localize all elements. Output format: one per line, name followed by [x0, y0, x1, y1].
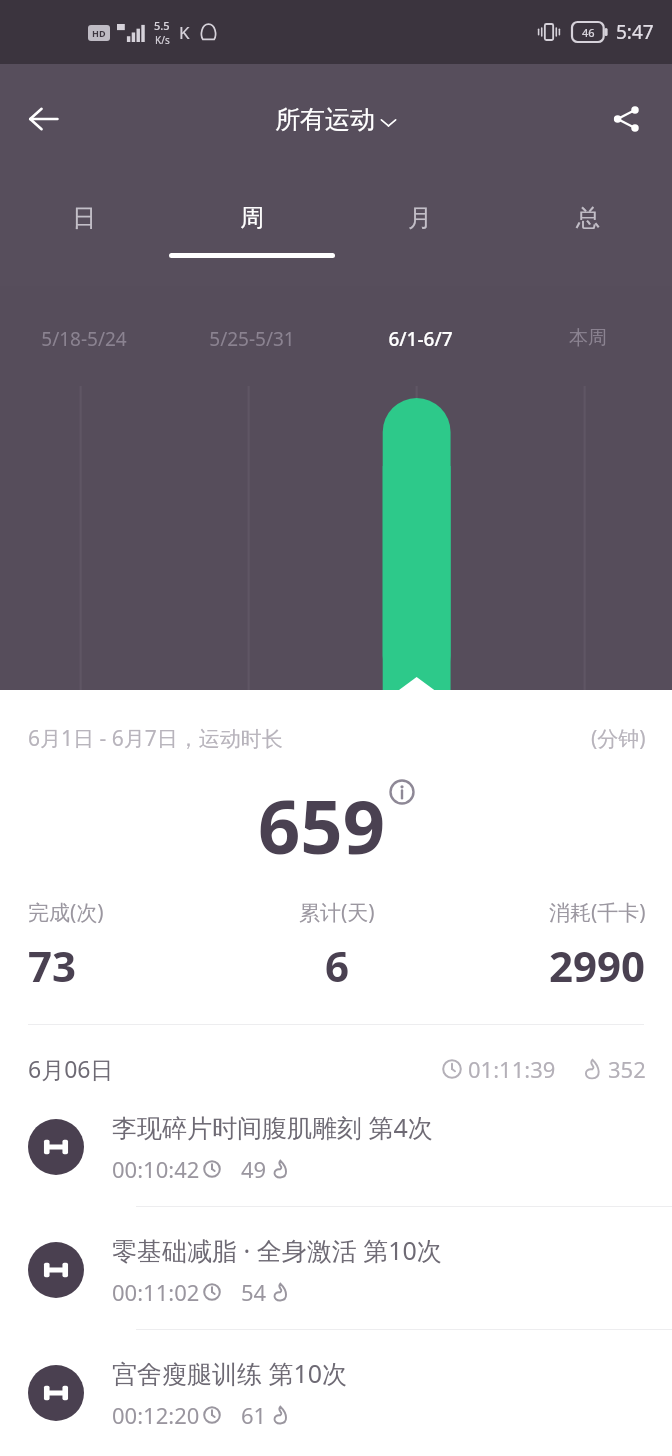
staticText: 61	[241, 1400, 267, 1430]
button[interactable]: 本周	[504, 326, 672, 350]
button[interactable]: 消耗(千卡)	[440, 898, 646, 994]
staticText: 6月06日	[28, 1053, 114, 1084]
button[interactable]: 累计(天)	[234, 898, 440, 994]
staticText: 00:10:42	[112, 1154, 200, 1184]
staticText: 00:12:20	[112, 1400, 200, 1430]
button[interactable]: 所有运动	[267, 98, 405, 141]
staticText: 总	[576, 203, 600, 233]
staticText: 本周	[569, 326, 607, 350]
staticText: 352	[608, 1054, 646, 1084]
staticText: (分钟)	[591, 724, 646, 753]
staticText: 月	[408, 203, 432, 233]
button[interactable]: 5/18-5/24	[0, 326, 168, 352]
button[interactable]: 李现碎片时间腹肌雕刻 第4次	[0, 1084, 672, 1207]
staticText: HD	[92, 27, 106, 39]
staticText: 6/1-6/7	[388, 326, 453, 352]
staticText: 659	[258, 775, 385, 876]
button[interactable]: 5/25-5/31	[168, 326, 336, 352]
staticText: 6月1日 - 6月7日，运动时长	[28, 724, 283, 753]
staticText: 所有运动	[275, 104, 375, 135]
button[interactable]: Share	[592, 85, 660, 153]
button[interactable]: Back	[10, 85, 78, 153]
staticText: 完成(次)	[28, 898, 104, 927]
staticText: 5/18-5/24	[41, 326, 127, 352]
staticText: K	[179, 21, 190, 44]
staticText: 累计(天)	[299, 898, 375, 927]
staticText: 6	[325, 937, 350, 994]
staticText: 73	[28, 937, 77, 994]
staticText: 46	[582, 25, 595, 40]
staticText: 01:11:39	[468, 1054, 556, 1084]
button[interactable]: 宫舍瘦腿训练 第10次	[0, 1330, 672, 1452]
staticText: 54	[241, 1277, 267, 1307]
staticText: 49	[241, 1154, 267, 1184]
staticText: 消耗(千卡)	[549, 898, 646, 927]
button[interactable]: 月	[336, 174, 504, 286]
staticText: K/s	[155, 33, 170, 47]
staticText: 李现碎片时间腹肌雕刻 第4次	[112, 1110, 433, 1144]
staticText: 5.5	[154, 18, 170, 33]
button[interactable]: 周	[168, 174, 336, 286]
staticText: 周	[240, 203, 264, 233]
staticText: 5:47	[616, 19, 654, 45]
staticText: 日	[72, 203, 96, 233]
staticText: 5/25-5/31	[209, 326, 295, 352]
button[interactable]: 总	[504, 174, 672, 286]
button[interactable]: 完成(次)	[28, 898, 234, 994]
button[interactable]: 6/1-6/7	[336, 326, 504, 352]
staticText: 2990	[549, 937, 646, 994]
staticText: 宫舍瘦腿训练 第10次	[112, 1356, 348, 1390]
staticText: 零基础减脂 · 全身激活 第10次	[112, 1233, 442, 1267]
staticText: 00:11:02	[112, 1277, 200, 1307]
button[interactable]: 日	[0, 174, 168, 286]
button[interactable]: 零基础减脂 · 全身激活 第10次	[0, 1207, 672, 1330]
